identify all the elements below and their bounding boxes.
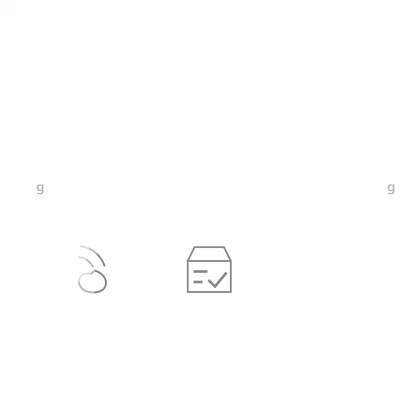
button[interactable]: Tap to continue [75, 243, 109, 295]
staticText: g [36, 177, 44, 195]
button[interactable]: Order received [186, 246, 232, 294]
staticText: g [387, 177, 395, 195]
button[interactable]: g [36, 177, 44, 195]
button[interactable]: g [387, 177, 395, 195]
